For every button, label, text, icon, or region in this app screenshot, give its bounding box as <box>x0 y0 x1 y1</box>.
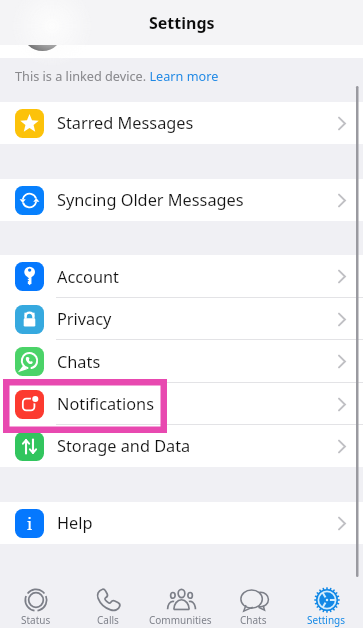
staticText: Privacy <box>57 308 112 330</box>
button[interactable]: Calls <box>72 580 144 627</box>
button[interactable]: Storage and Data <box>0 425 363 467</box>
button[interactable]: Starred Messages <box>0 102 363 144</box>
staticText: Account <box>57 266 119 288</box>
staticText: Calls <box>97 613 119 627</box>
button[interactable]: Syncing Older Messages <box>0 179 363 221</box>
staticText: Communities <box>149 613 212 627</box>
staticText: Settings <box>307 613 346 627</box>
button[interactable]: Chats <box>217 580 290 627</box>
staticText: Storage and Data <box>57 435 191 457</box>
staticText: This is a linked device. Learn more <box>15 67 219 84</box>
button[interactable]: Privacy <box>0 298 363 340</box>
staticText: Settings <box>149 12 215 34</box>
staticText: Chats <box>57 351 101 373</box>
staticText: Status <box>21 613 51 627</box>
staticText: i <box>27 513 33 535</box>
button[interactable]: Account <box>0 255 363 298</box>
button[interactable]: Communities <box>144 580 217 627</box>
staticText: Notifications <box>57 393 154 415</box>
button[interactable]: Notifications <box>0 383 363 425</box>
staticText: Help <box>57 512 93 534</box>
staticText: Syncing Older Messages <box>57 189 244 211</box>
staticText: Chats <box>240 613 267 627</box>
button[interactable]: Chats <box>0 340 363 383</box>
button[interactable]: Settings <box>290 580 363 627</box>
button[interactable]: Status <box>0 580 72 627</box>
button[interactable]: i <box>0 502 363 544</box>
staticText: Starred Messages <box>57 112 194 134</box>
